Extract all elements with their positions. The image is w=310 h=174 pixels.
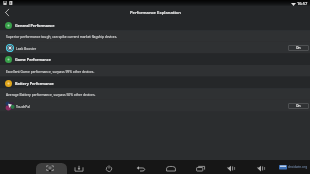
button[interactable]: Back bbox=[0, 6, 13, 19]
staticText: droidwin.org bbox=[288, 165, 308, 169]
staticText: General Performance bbox=[15, 23, 55, 28]
button[interactable]: Home bbox=[162, 162, 180, 174]
button[interactable]: Volume up bbox=[252, 162, 270, 174]
button[interactable]: Screenshot bbox=[41, 162, 59, 174]
staticText: Excellent Game performance, surpass 99% … bbox=[6, 69, 95, 73]
button[interactable]: TouchPal bbox=[0, 100, 310, 112]
staticText: Superior performance tough, can spike cu… bbox=[6, 34, 118, 38]
button[interactable]: Back bbox=[132, 162, 150, 174]
staticText: On bbox=[296, 104, 301, 108]
button[interactable]: Install bbox=[70, 162, 88, 174]
button[interactable]: On bbox=[288, 45, 309, 51]
button[interactable]: On bbox=[288, 103, 309, 109]
staticText: Average Battery performance, surpass 50%… bbox=[6, 92, 96, 96]
button[interactable]: Recents bbox=[192, 162, 210, 174]
staticText: Performance Explanation bbox=[130, 10, 181, 16]
button[interactable]: Leak Booster bbox=[0, 42, 310, 54]
button[interactable]: Power bbox=[100, 162, 118, 174]
staticText: 16:57 bbox=[297, 1, 308, 6]
button[interactable]: Game Performance bbox=[0, 53, 310, 65]
staticText: Game Performance bbox=[15, 57, 51, 62]
button[interactable]: Volume down bbox=[222, 162, 240, 174]
staticText: Battery Performance bbox=[15, 81, 54, 86]
staticText: TouchPal bbox=[16, 104, 30, 108]
button[interactable]: General Performance bbox=[0, 19, 310, 31]
staticText: Leak Booster bbox=[16, 46, 37, 50]
staticText: On bbox=[296, 46, 301, 50]
button[interactable]: Battery Performance bbox=[0, 77, 310, 89]
